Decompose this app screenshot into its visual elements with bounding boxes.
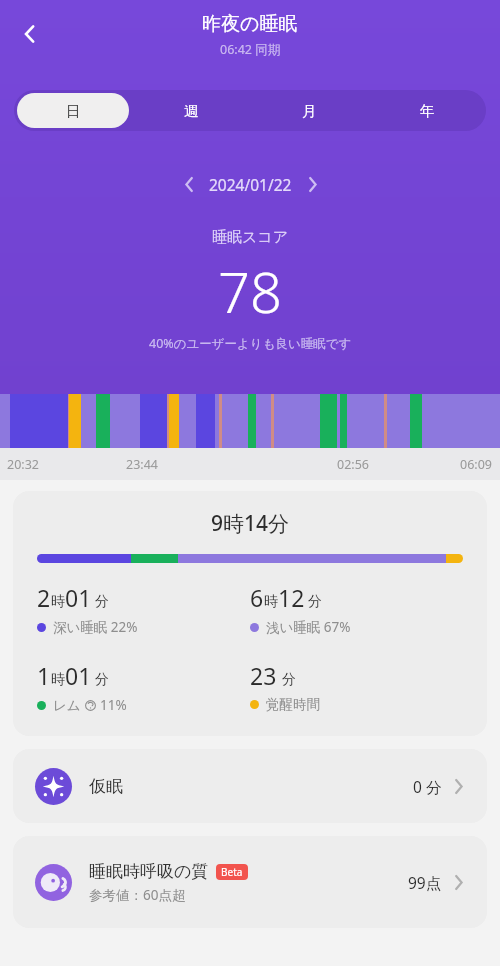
staticText: 参考値：60点超 bbox=[89, 886, 186, 904]
staticText: 06:42 同期 bbox=[220, 41, 281, 58]
button[interactable]: Next day bbox=[296, 168, 328, 200]
button[interactable]: 月 bbox=[253, 93, 365, 128]
staticText: 40%のユーザーよりも良い睡眠です bbox=[149, 335, 352, 352]
staticText: 仮眠 bbox=[89, 776, 123, 797]
staticText: 9時14分 bbox=[13, 509, 487, 538]
staticText: 分 bbox=[95, 593, 109, 611]
staticText: 11% bbox=[100, 696, 127, 714]
staticText: 01 bbox=[65, 582, 92, 613]
staticText: 睡眠時呼吸の質 bbox=[89, 861, 209, 882]
staticText: 昨夜の睡眠 bbox=[202, 12, 298, 36]
staticText: 23:44 bbox=[126, 456, 158, 473]
staticText: 20:32 bbox=[7, 456, 39, 473]
staticText: 99点 bbox=[408, 872, 442, 893]
staticText: 2024/01/22 bbox=[209, 174, 292, 195]
staticText: 浅い睡眠 67% bbox=[266, 618, 351, 636]
button[interactable]: 睡眠時呼吸の質 bbox=[13, 836, 487, 928]
button[interactable]: 仮眠 bbox=[13, 749, 487, 823]
staticText: 分 bbox=[308, 593, 322, 611]
button[interactable]: 9時14分 bbox=[13, 491, 487, 736]
staticText: 78 bbox=[218, 253, 282, 329]
button[interactable]: 週 bbox=[135, 93, 247, 128]
staticText: 23 bbox=[250, 660, 277, 691]
staticText: 6 bbox=[250, 582, 264, 613]
staticText: 06:09 bbox=[460, 456, 492, 473]
staticText: 時 bbox=[51, 671, 65, 689]
staticText: 日 bbox=[66, 102, 81, 120]
button[interactable]: Back bbox=[8, 12, 52, 56]
staticText: レム bbox=[53, 697, 81, 714]
staticText: 分 bbox=[95, 671, 109, 689]
staticText: 02:56 bbox=[337, 456, 369, 473]
staticText: 深い睡眠 22% bbox=[53, 618, 138, 636]
staticText: 時 bbox=[264, 593, 278, 611]
staticText: 週 bbox=[184, 102, 199, 120]
staticText: 1 bbox=[37, 660, 51, 691]
staticText: 2 bbox=[37, 582, 51, 613]
staticText: 分 bbox=[282, 671, 296, 689]
staticText: 時 bbox=[51, 593, 65, 611]
staticText: 01 bbox=[65, 660, 92, 691]
staticText: 0 分 bbox=[413, 776, 442, 797]
button[interactable]: 年 bbox=[371, 93, 483, 128]
staticText: 覚醒時間 bbox=[266, 696, 320, 713]
staticText: Beta bbox=[221, 865, 243, 879]
button[interactable]: Previous day bbox=[173, 168, 205, 200]
staticText: 睡眠スコア bbox=[212, 228, 289, 247]
button[interactable]: 日 bbox=[17, 93, 129, 128]
staticText: 12 bbox=[278, 582, 305, 613]
staticText: 年 bbox=[420, 102, 435, 120]
staticText: 月 bbox=[302, 102, 317, 120]
